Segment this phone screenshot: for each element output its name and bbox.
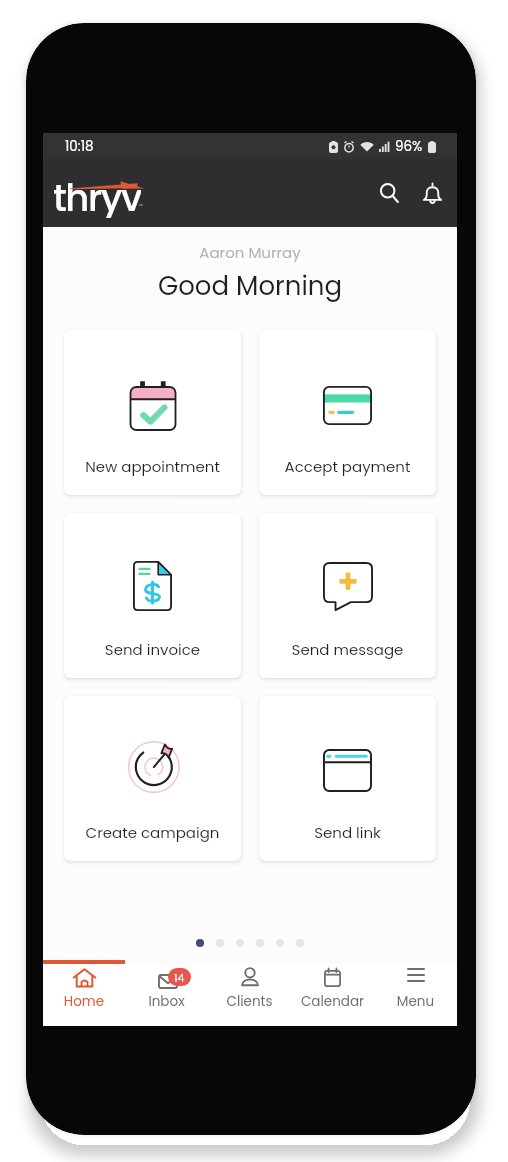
staticText: 10:18	[65, 137, 94, 156]
button[interactable]: Home	[43, 964, 125, 1026]
staticText: New appointment	[64, 456, 241, 477]
staticText: Send invoice	[64, 639, 241, 660]
staticText: Aaron Murray	[43, 242, 457, 263]
button[interactable]: Accept payment	[259, 330, 436, 495]
button[interactable]: Send message	[259, 513, 436, 678]
staticText: Menu	[374, 992, 457, 1011]
button[interactable]: Calendar	[291, 964, 374, 1026]
staticText: 96%	[395, 137, 423, 156]
button[interactable]: Send link	[259, 696, 436, 861]
button[interactable]: Send invoice	[64, 513, 241, 678]
staticText: Send message	[259, 639, 436, 660]
staticText: Good Morning	[43, 268, 457, 304]
staticText: 14	[174, 970, 185, 985]
button[interactable]: 14	[125, 964, 208, 1026]
staticText: Send link	[259, 822, 436, 843]
button[interactable]: Search	[371, 175, 407, 211]
staticText: Inbox	[125, 992, 208, 1011]
staticText: Accept payment	[259, 456, 436, 477]
button[interactable]: Notifications	[414, 175, 450, 211]
button[interactable]: Clients	[208, 964, 291, 1026]
button[interactable]: Create campaign	[64, 696, 241, 861]
staticText: Home	[43, 992, 125, 1011]
staticText: Clients	[208, 992, 291, 1011]
button[interactable]: New appointment	[64, 330, 241, 495]
staticText: Create campaign	[64, 822, 241, 843]
staticText: Calendar	[291, 992, 374, 1011]
button[interactable]: Menu	[374, 964, 457, 1026]
staticText: thryv	[53, 172, 141, 218]
